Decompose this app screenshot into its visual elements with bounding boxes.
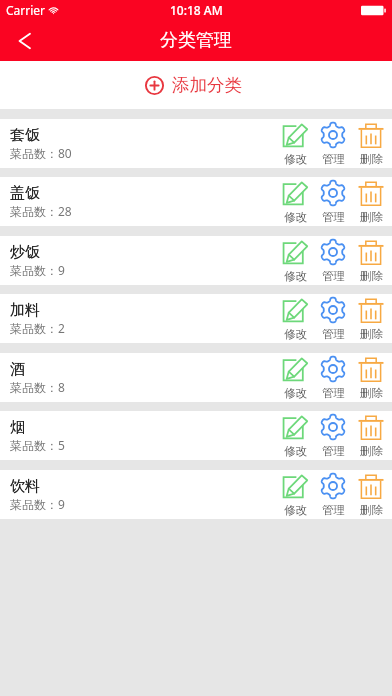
- button[interactable]: 管理: [314, 470, 352, 519]
- button[interactable]: 添加分类: [139, 70, 248, 100]
- staticText: 修改: [284, 503, 307, 517]
- button[interactable]: 管理: [314, 294, 352, 343]
- staticText: 管理: [322, 503, 345, 517]
- staticText: 管理: [322, 210, 345, 224]
- button[interactable]: 删除: [352, 236, 390, 285]
- staticText: 添加分类: [172, 74, 242, 96]
- staticText: 修改: [284, 327, 307, 341]
- staticText: 删除: [360, 152, 383, 166]
- staticText: 酒: [10, 360, 25, 379]
- staticText: 饮料: [10, 477, 40, 496]
- staticText: 菜品数：5: [10, 437, 65, 453]
- staticText: 烟: [10, 418, 25, 437]
- staticText: 修改: [284, 210, 307, 224]
- button[interactable]: 管理: [314, 119, 352, 168]
- staticText: 菜品数：80: [10, 145, 72, 161]
- button[interactable]: 管理: [314, 177, 352, 226]
- button[interactable]: 修改: [276, 236, 314, 285]
- staticText: 盖饭: [10, 184, 40, 203]
- staticText: 套饭: [10, 126, 40, 145]
- staticText: 炒饭: [10, 243, 40, 262]
- button[interactable]: 炒饭: [0, 236, 392, 285]
- staticText: 管理: [322, 269, 345, 283]
- staticText: 管理: [322, 386, 345, 400]
- staticText: 菜品数：9: [10, 262, 65, 278]
- staticText: 管理: [322, 152, 345, 166]
- staticText: 删除: [360, 269, 383, 283]
- button[interactable]: 删除: [352, 294, 390, 343]
- staticText: 修改: [284, 444, 307, 458]
- button[interactable]: 修改: [276, 411, 314, 460]
- staticText: 菜品数：8: [10, 379, 65, 395]
- button[interactable]: 盖饭: [0, 177, 392, 226]
- staticText: 删除: [360, 503, 383, 517]
- staticText: 修改: [284, 152, 307, 166]
- button[interactable]: 修改: [276, 177, 314, 226]
- button[interactable]: 烟: [0, 411, 392, 460]
- staticText: 管理: [322, 444, 345, 458]
- button[interactable]: 加料: [0, 294, 392, 343]
- staticText: 删除: [360, 386, 383, 400]
- staticText: 删除: [360, 327, 383, 341]
- staticText: 修改: [284, 386, 307, 400]
- button[interactable]: Back: [10, 27, 38, 55]
- staticText: 加料: [10, 301, 40, 320]
- staticText: 酒: [10, 360, 25, 379]
- button[interactable]: 修改: [276, 294, 314, 343]
- staticText: 菜品数：2: [10, 320, 65, 336]
- button[interactable]: 套饭: [0, 119, 392, 168]
- staticText: 10:18 AM: [170, 2, 223, 18]
- staticText: 饮料: [10, 477, 40, 496]
- staticText: 删除: [360, 444, 383, 458]
- button[interactable]: 删除: [352, 470, 390, 519]
- staticText: 菜品数：28: [10, 203, 72, 219]
- staticText: 菜品数：9: [10, 496, 65, 512]
- staticText: 分类管理: [160, 29, 232, 52]
- staticText: 烟: [10, 418, 25, 437]
- button[interactable]: 管理: [314, 411, 352, 460]
- button[interactable]: 修改: [276, 353, 314, 402]
- button[interactable]: 删除: [352, 411, 390, 460]
- button[interactable]: 管理: [314, 236, 352, 285]
- button[interactable]: 饮料: [0, 470, 392, 519]
- staticText: 修改: [284, 269, 307, 283]
- staticText: 盖饭: [10, 184, 40, 203]
- staticText: 加料: [10, 301, 40, 320]
- staticText: 删除: [360, 210, 383, 224]
- staticText: 套饭: [10, 126, 40, 145]
- button[interactable]: 修改: [276, 470, 314, 519]
- button[interactable]: 删除: [352, 119, 390, 168]
- button[interactable]: 酒: [0, 353, 392, 402]
- staticText: Carrier: [6, 2, 46, 18]
- button[interactable]: 管理: [314, 353, 352, 402]
- button[interactable]: 删除: [352, 177, 390, 226]
- button[interactable]: 删除: [352, 353, 390, 402]
- button[interactable]: 修改: [276, 119, 314, 168]
- staticText: 管理: [322, 327, 345, 341]
- staticText: 炒饭: [10, 243, 40, 262]
